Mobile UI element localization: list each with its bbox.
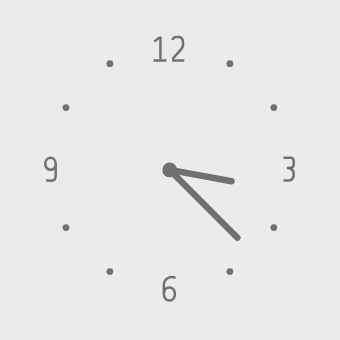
- button[interactable]: Analog clock face showing 3:22: [0, 0, 340, 340]
